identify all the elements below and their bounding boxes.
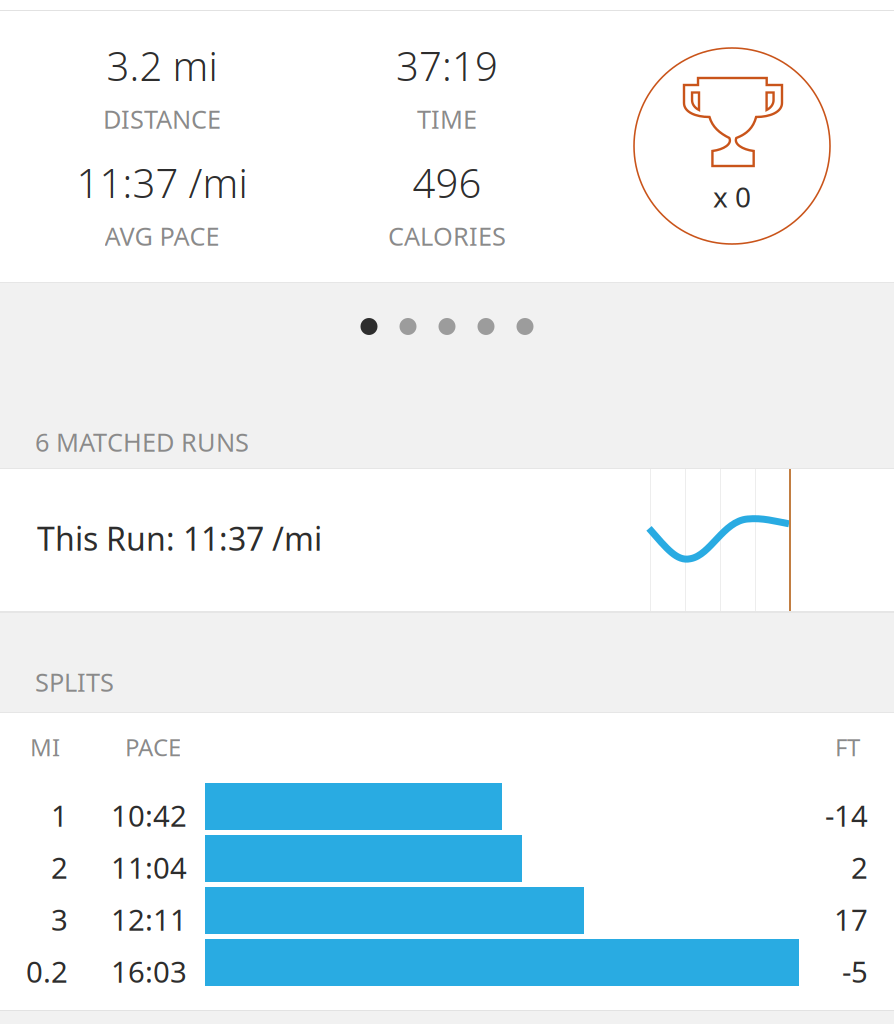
staticText: 1 <box>51 796 68 835</box>
staticText: 12:11 <box>111 900 187 939</box>
staticText: TIME <box>417 102 477 136</box>
button[interactable]: Achievements <box>634 48 830 244</box>
staticText: 11:37 /mi <box>76 156 247 209</box>
staticText: MI <box>30 731 60 763</box>
button[interactable]: 1 <box>0 783 894 835</box>
staticText: AVG PACE <box>104 219 219 253</box>
staticText: 2 <box>51 848 68 887</box>
staticText: This Run: 11:37 /mi <box>37 517 322 559</box>
staticText: 6 MATCHED RUNS <box>35 425 249 459</box>
staticText: PACE <box>125 731 181 763</box>
button[interactable]: 2 <box>0 835 894 887</box>
staticText: 2 <box>851 848 868 887</box>
staticText: 3 <box>51 900 68 939</box>
staticText: 37:19 <box>396 39 498 92</box>
staticText: 0.2 <box>26 952 68 991</box>
staticText: 17 <box>834 900 868 939</box>
button[interactable]: 0.2 <box>0 939 894 991</box>
staticText: 11:04 <box>111 848 187 887</box>
staticText: SPLITS <box>35 665 114 699</box>
staticText: 3.2 mi <box>106 39 217 92</box>
staticText: -14 <box>825 796 868 835</box>
staticText: DISTANCE <box>103 102 221 136</box>
staticText: 496 <box>412 156 481 209</box>
staticText: FT <box>835 731 860 763</box>
staticText: 16:03 <box>111 952 187 991</box>
staticText: -5 <box>842 952 868 991</box>
staticText: 10:42 <box>111 796 187 835</box>
button[interactable]: 3 <box>0 887 894 939</box>
staticText: x 0 <box>713 178 751 215</box>
button[interactable]: This Run: 11:37 /mi <box>0 469 894 611</box>
staticText: CALORIES <box>388 219 506 253</box>
